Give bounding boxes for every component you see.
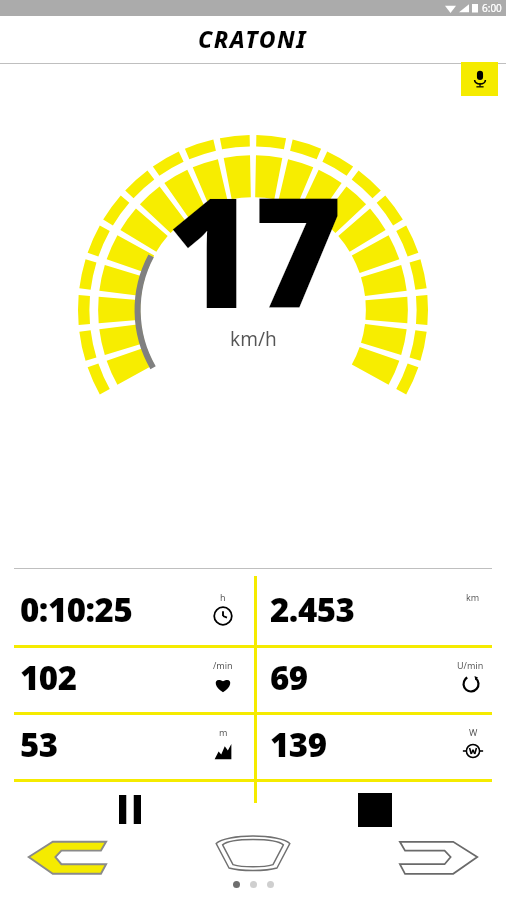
- staticText: W: [469, 726, 478, 738]
- staticText: 2.453: [270, 587, 355, 632]
- staticText: 6:00: [482, 1, 502, 15]
- button[interactable]: Pause: [105, 788, 155, 830]
- button[interactable]: Previous screen: [20, 832, 120, 882]
- staticText: 102: [20, 655, 77, 700]
- button[interactable]: 139: [270, 713, 492, 775]
- button[interactable]: 53: [20, 713, 242, 775]
- staticText: 17: [166, 146, 341, 353]
- button[interactable]: 69: [270, 646, 492, 708]
- staticText: U/min: [457, 659, 484, 671]
- button[interactable]: Voice control: [461, 62, 498, 96]
- button[interactable]: 2.453: [270, 578, 492, 640]
- button[interactable]: Next screen: [386, 832, 486, 882]
- button[interactable]: 0:10:25: [20, 578, 242, 640]
- button[interactable]: 102: [20, 646, 242, 708]
- staticText: CRATONI: [198, 23, 308, 54]
- staticText: 53: [20, 722, 58, 767]
- staticText: h: [220, 591, 226, 603]
- staticText: km: [466, 591, 480, 603]
- button[interactable]: Stop: [350, 788, 400, 832]
- staticText: 69: [270, 655, 308, 700]
- staticText: km/h: [230, 326, 277, 352]
- staticText: /min: [213, 659, 233, 671]
- button[interactable]: Current screen: [203, 828, 303, 876]
- staticText: 0:10:25: [20, 587, 133, 632]
- staticText: m: [219, 726, 228, 738]
- staticText: 139: [270, 722, 327, 767]
